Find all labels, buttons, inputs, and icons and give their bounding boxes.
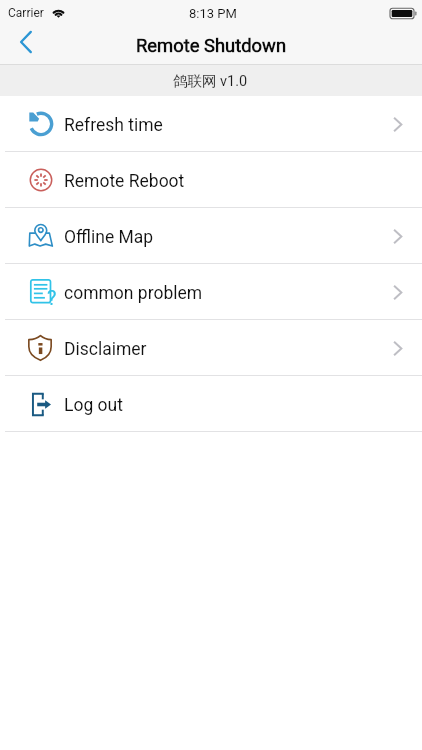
staticText: Remote Reboot <box>64 171 185 192</box>
button[interactable]: Back <box>0 26 46 65</box>
staticText: Disclaimer <box>64 339 147 360</box>
button[interactable]: Disclaimer <box>0 320 422 375</box>
staticText: Carrier <box>8 6 44 20</box>
staticText: Offline Map <box>64 227 154 248</box>
button[interactable]: Log out <box>0 376 422 431</box>
staticText: Remote Shutdown <box>136 35 287 57</box>
button[interactable]: Offline Map <box>0 208 422 263</box>
button[interactable]: Refresh time <box>0 96 422 151</box>
staticText: common problem <box>64 283 203 304</box>
button[interactable]: ? <box>0 264 422 319</box>
staticText: 鸽联网 v1.0 <box>173 72 248 90</box>
staticText: Refresh time <box>64 115 163 136</box>
button[interactable]: Remote Reboot <box>0 152 422 207</box>
staticText: ? <box>47 286 57 309</box>
staticText: Log out <box>64 395 123 416</box>
staticText: 8:13 PM <box>189 6 237 21</box>
